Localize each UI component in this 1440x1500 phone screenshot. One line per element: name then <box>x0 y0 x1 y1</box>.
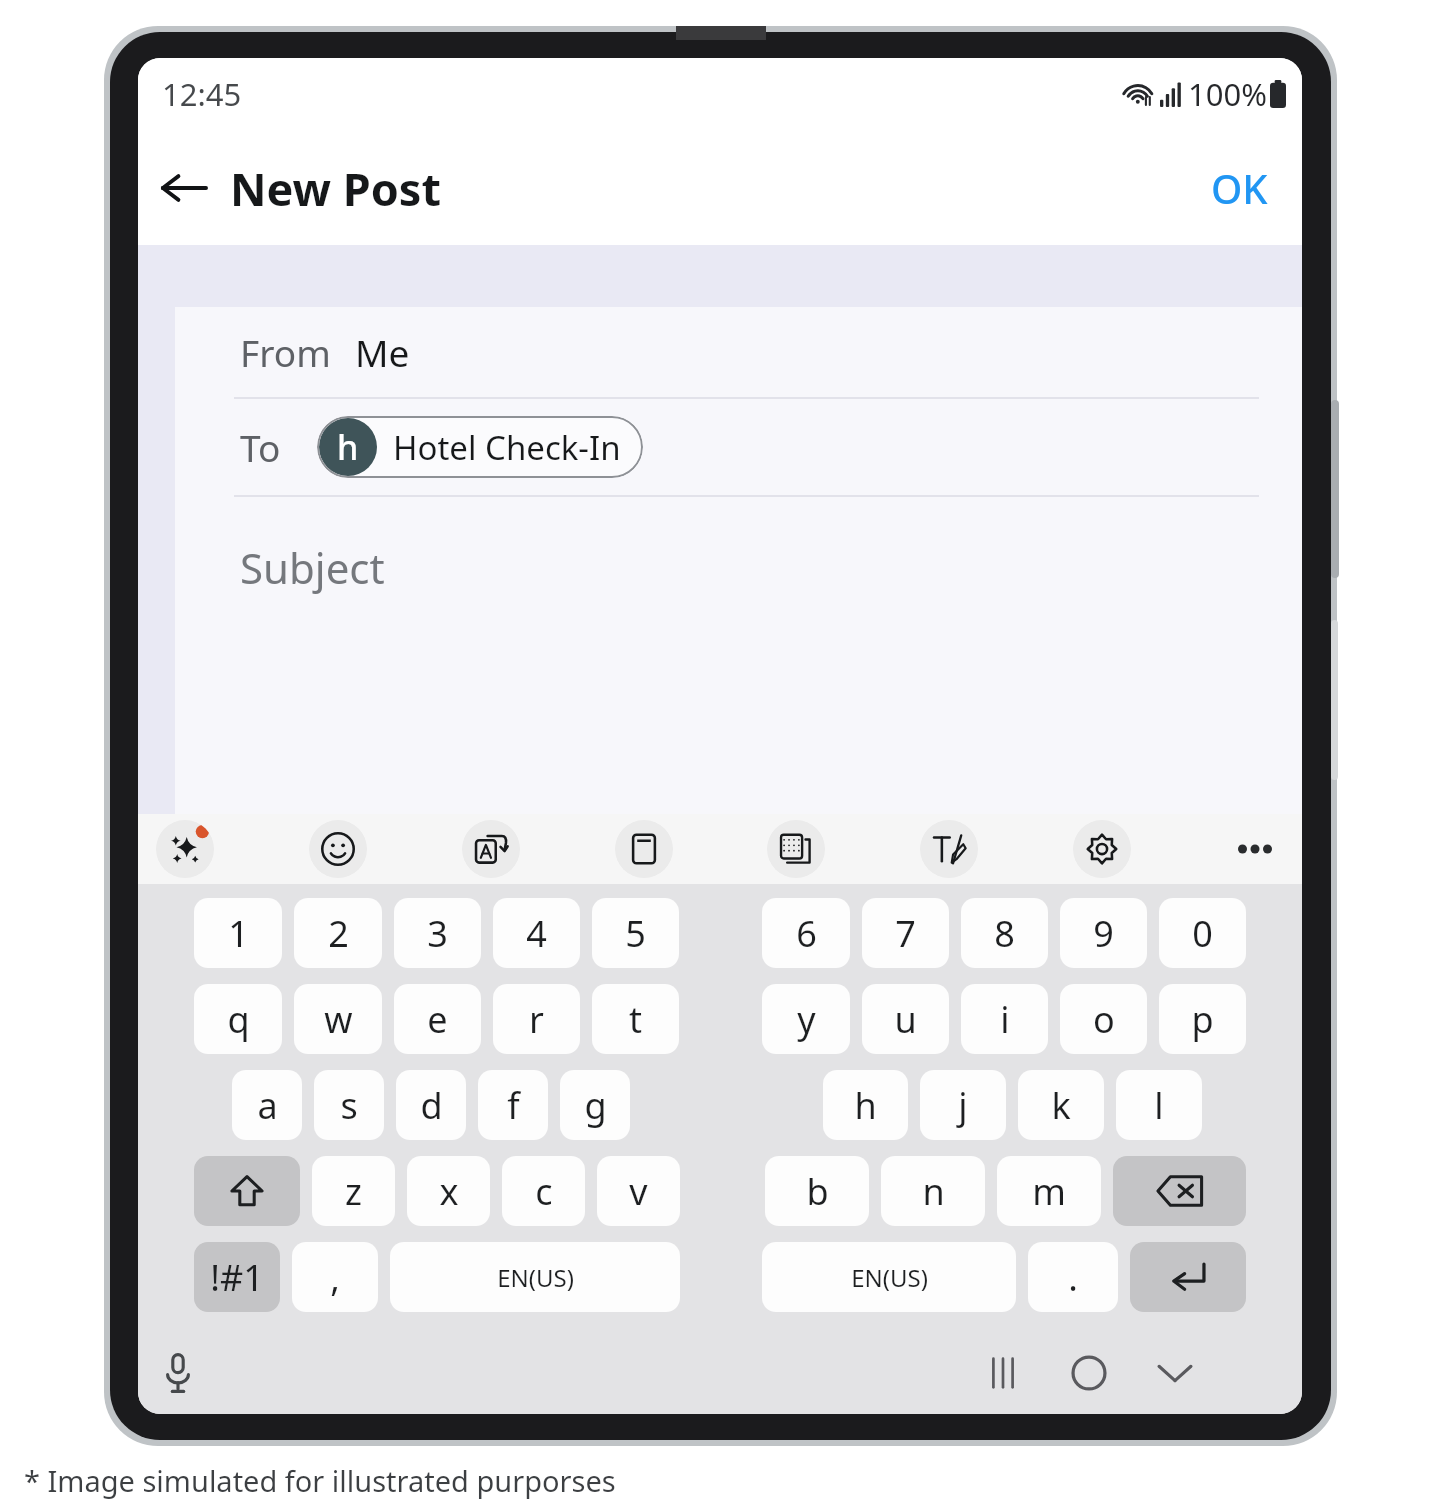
button[interactable]: y <box>762 984 850 1054</box>
staticText: h <box>854 1081 877 1130</box>
button[interactable]: a <box>232 1070 302 1140</box>
staticText: n <box>922 1167 945 1216</box>
button[interactable]: , <box>292 1242 378 1312</box>
button[interactable]: Voice input <box>146 1341 210 1405</box>
button[interactable]: u <box>862 984 949 1054</box>
button[interactable]: x <box>407 1156 490 1226</box>
button[interactable]: 4 <box>493 898 580 968</box>
button[interactable]: Keyboard modes <box>767 820 825 878</box>
staticText: 12:45 <box>162 73 242 115</box>
button[interactable]: 1 <box>194 898 282 968</box>
button[interactable]: w <box>294 984 382 1054</box>
staticText: 4 <box>526 909 547 958</box>
button[interactable]: e <box>394 984 481 1054</box>
staticText: y <box>797 995 816 1044</box>
staticText: 3 <box>427 909 448 958</box>
button[interactable]: c <box>502 1156 585 1226</box>
button[interactable]: OK <box>1185 147 1294 229</box>
button[interactable]: 6 <box>762 898 850 968</box>
staticText: !#1 <box>210 1253 264 1302</box>
button[interactable]: EN(US) <box>762 1242 1016 1312</box>
button[interactable]: AI suggestions <box>156 820 214 878</box>
staticText: Subject <box>240 539 385 596</box>
staticText: 100% <box>1188 73 1267 115</box>
staticText: p <box>1191 995 1214 1044</box>
button[interactable]: z <box>312 1156 395 1226</box>
button[interactable]: 0 <box>1159 898 1246 968</box>
button[interactable]: Clipboard <box>615 820 673 878</box>
staticText: l <box>1154 1081 1164 1130</box>
button[interactable]: Emoji <box>309 820 367 878</box>
staticText: g <box>584 1081 607 1130</box>
staticText: To <box>240 422 281 472</box>
button[interactable]: 9 <box>1060 898 1147 968</box>
staticText: a <box>257 1081 278 1130</box>
button[interactable]: More options <box>1226 820 1284 878</box>
button[interactable]: v <box>597 1156 680 1226</box>
button[interactable]: k <box>1018 1070 1104 1140</box>
button[interactable]: 8 <box>961 898 1048 968</box>
button[interactable]: Enter <box>1130 1242 1246 1312</box>
staticText: i <box>1000 995 1010 1044</box>
staticText: EN(US) <box>497 1261 574 1294</box>
button[interactable]: m <box>997 1156 1101 1226</box>
button[interactable]: . <box>1028 1242 1118 1312</box>
staticText: 2 <box>328 909 349 958</box>
button[interactable]: i <box>961 984 1048 1054</box>
staticText: b <box>806 1167 829 1216</box>
staticText: m <box>1032 1167 1066 1216</box>
staticText: * Image simulated for illustrated purpor… <box>24 1461 616 1500</box>
button[interactable]: Home <box>1046 1332 1132 1414</box>
button[interactable]: !#1 <box>194 1242 280 1312</box>
button[interactable]: q <box>194 984 282 1054</box>
staticText: 1 <box>228 909 249 958</box>
staticText: v <box>629 1167 648 1216</box>
staticText: 7 <box>895 909 916 958</box>
button[interactable]: r <box>493 984 580 1054</box>
button[interactable]: l <box>1116 1070 1202 1140</box>
staticText: x <box>439 1167 459 1216</box>
staticText: z <box>345 1167 362 1216</box>
button[interactable]: p <box>1159 984 1246 1054</box>
staticText: u <box>894 995 917 1044</box>
staticText: 9 <box>1093 909 1114 958</box>
button[interactable]: To <box>175 399 1302 495</box>
staticText: From <box>240 327 331 377</box>
button[interactable]: 3 <box>394 898 481 968</box>
staticText: EN(US) <box>851 1261 928 1294</box>
button[interactable]: EN(US) <box>390 1242 680 1312</box>
button[interactable]: o <box>1060 984 1147 1054</box>
staticText: Hotel Check-In <box>393 425 621 470</box>
button[interactable]: f <box>478 1070 548 1140</box>
button[interactable]: From <box>175 307 1302 397</box>
staticText: 8 <box>994 909 1015 958</box>
button[interactable]: Shift <box>194 1156 300 1226</box>
button[interactable]: s <box>314 1070 384 1140</box>
staticText: q <box>227 995 250 1044</box>
button[interactable]: Settings <box>1073 820 1131 878</box>
button[interactable]: 7 <box>862 898 949 968</box>
button[interactable]: b <box>765 1156 869 1226</box>
button[interactable]: 2 <box>294 898 382 968</box>
button[interactable]: Backspace <box>1113 1156 1246 1226</box>
staticText: k <box>1051 1081 1071 1130</box>
staticText: j <box>958 1081 968 1130</box>
button[interactable]: g <box>560 1070 630 1140</box>
button[interactable]: n <box>881 1156 985 1226</box>
button[interactable]: Subject <box>175 525 1302 609</box>
staticText: Me <box>355 327 410 377</box>
staticText: 6 <box>796 909 817 958</box>
button[interactable]: Recent apps <box>960 1332 1046 1414</box>
button[interactable]: Translate <box>462 820 520 878</box>
button[interactable]: 5 <box>592 898 679 968</box>
button[interactable]: j <box>920 1070 1006 1140</box>
staticText: e <box>427 995 448 1044</box>
button[interactable]: Back <box>138 142 230 234</box>
button[interactable]: h <box>823 1070 908 1140</box>
button[interactable]: t <box>592 984 679 1054</box>
button[interactable]: Handwriting <box>920 820 978 878</box>
button[interactable]: Hide keyboard <box>1132 1332 1218 1414</box>
staticText: s <box>340 1081 358 1130</box>
button[interactable]: h <box>317 416 643 478</box>
button[interactable]: d <box>396 1070 466 1140</box>
